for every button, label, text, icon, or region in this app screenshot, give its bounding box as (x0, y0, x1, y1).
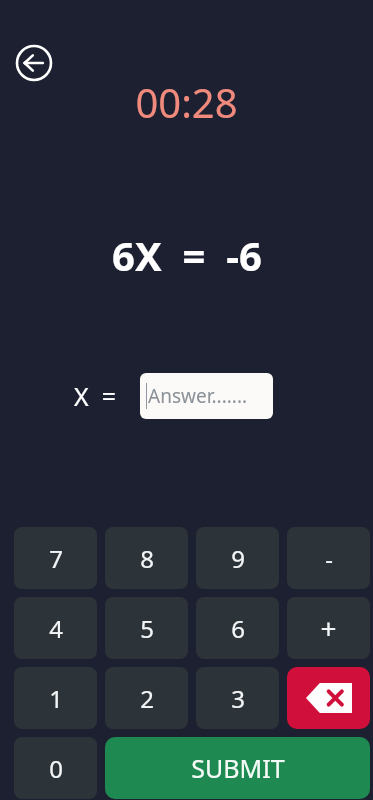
button[interactable]: 3 (196, 667, 279, 729)
button[interactable]: + (287, 597, 370, 659)
button[interactable]: 4 (14, 597, 97, 659)
button[interactable]: Back (15, 44, 53, 82)
button[interactable]: - (287, 527, 370, 589)
button[interactable]: 0 (14, 737, 97, 799)
staticText: 7 (49, 542, 63, 575)
staticText: 2 (140, 682, 154, 715)
button[interactable]: Backspace (287, 667, 370, 729)
button[interactable]: 2 (105, 667, 188, 729)
staticText: 00:28 (135, 75, 238, 129)
button[interactable]: 8 (105, 527, 188, 589)
staticText: 6 (231, 612, 245, 645)
staticText: + (320, 609, 337, 647)
staticText: 9 (231, 542, 245, 575)
button[interactable]: Answer....... (140, 373, 273, 419)
staticText: 0 (49, 752, 63, 785)
button[interactable]: SUBMIT (105, 737, 370, 799)
button[interactable]: 1 (14, 667, 97, 729)
staticText: SUBMIT (191, 751, 285, 785)
staticText: 8 (140, 542, 154, 575)
staticText: X = (74, 379, 116, 413)
staticText: - (325, 542, 333, 575)
staticText: 5 (140, 612, 154, 645)
staticText: 4 (49, 612, 63, 645)
button[interactable]: 9 (196, 527, 279, 589)
staticText: Answer....... (148, 383, 248, 409)
button[interactable]: 7 (14, 527, 97, 589)
button[interactable]: 5 (105, 597, 188, 659)
staticText: 6X = -6 (112, 228, 262, 282)
button[interactable]: 6 (196, 597, 279, 659)
staticText: 1 (49, 682, 63, 715)
staticText: 3 (231, 682, 245, 715)
